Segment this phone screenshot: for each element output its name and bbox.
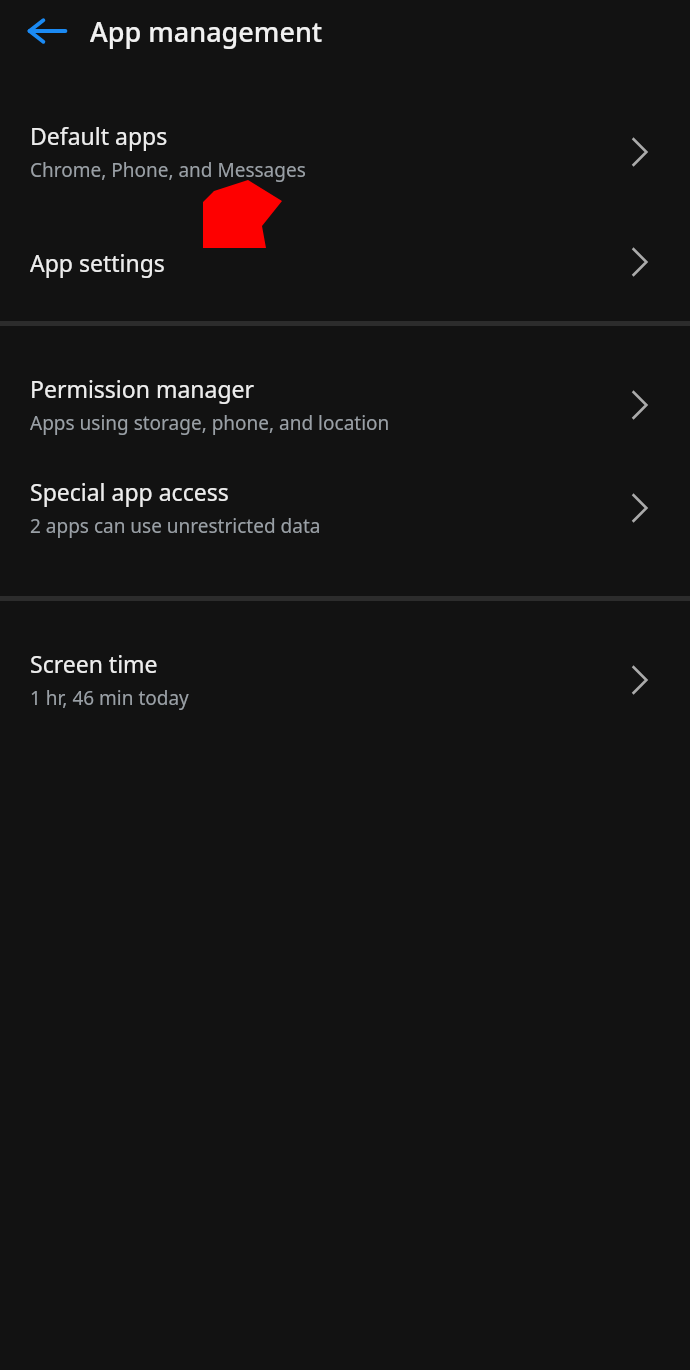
staticText: App settings <box>30 247 165 278</box>
staticText: 2 apps can use unrestricted data <box>30 513 321 539</box>
staticText: Special app access <box>30 476 229 507</box>
staticText: Screen time <box>30 648 158 679</box>
staticText: Permission manager <box>30 373 255 404</box>
other: Back <box>24 8 70 54</box>
button[interactable]: Screen time <box>0 628 690 731</box>
button[interactable]: Special app access <box>0 456 690 559</box>
button[interactable]: App settings <box>0 203 690 321</box>
button[interactable]: Back <box>24 8 70 54</box>
button[interactable]: Permission manager <box>0 353 690 456</box>
staticText: App management <box>90 13 323 50</box>
staticText: Apps using storage, phone, and location <box>30 410 390 436</box>
staticText: Chrome, Phone, and Messages <box>30 157 306 183</box>
staticText: Default apps <box>30 120 168 151</box>
button[interactable]: Default apps <box>0 100 690 203</box>
staticText: 1 hr, 46 min today <box>30 685 189 711</box>
